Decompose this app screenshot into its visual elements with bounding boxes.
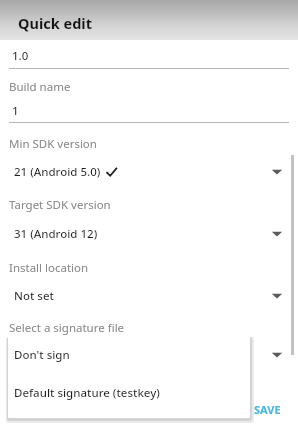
staticText: Version name <box>9 22 84 38</box>
staticText: 31 (Android 12) <box>14 226 98 242</box>
button[interactable]: SAVE <box>250 399 285 419</box>
button[interactable]: Select a signature file <box>0 344 298 366</box>
button[interactable]: Not set <box>0 285 298 307</box>
staticText: Target SDK version <box>9 197 111 213</box>
button[interactable]: 31 (Android 12) <box>0 223 298 245</box>
staticText: 1.0 <box>12 48 29 64</box>
staticText: Default signature (testkey) <box>14 385 160 401</box>
staticText: SAVE <box>254 402 281 417</box>
button[interactable]: Default signature (testkey) <box>8 374 250 412</box>
staticText: Don't sign <box>14 347 70 363</box>
staticText: Not set <box>14 288 54 304</box>
staticText: Min SDK version <box>9 136 97 152</box>
other: Select a signature file <box>270 350 284 360</box>
staticText: Quick edit <box>18 13 92 33</box>
staticText: Build name <box>9 79 71 95</box>
button[interactable]: 21 (Android 5.0) <box>0 161 298 183</box>
staticText: 21 (Android 5.0) <box>14 164 101 180</box>
staticText: 1 <box>12 103 19 119</box>
staticText: Install location <box>9 260 89 276</box>
staticText: Select a signature file <box>9 320 125 336</box>
button[interactable]: Don't sign <box>8 336 250 374</box>
